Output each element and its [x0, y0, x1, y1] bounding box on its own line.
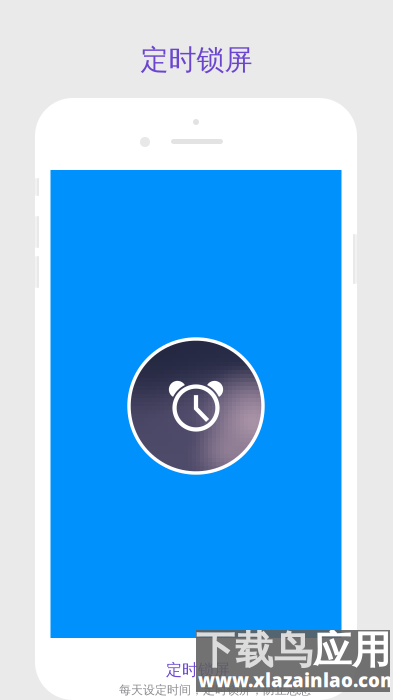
staticText: 定时锁屏 [140, 43, 252, 77]
staticText: 定时锁屏 [166, 660, 230, 680]
staticText: 下载鸟 [196, 626, 313, 674]
staticText: www.xlazainlao.com [198, 668, 393, 692]
button[interactable]: Start timed lock [128, 338, 264, 474]
staticText: 每天设定时间，定时锁屏，防止忘您 [119, 683, 311, 697]
staticText: 应用 [313, 626, 391, 674]
